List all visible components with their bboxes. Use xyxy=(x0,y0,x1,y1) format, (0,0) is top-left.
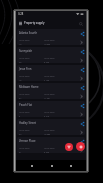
staticText: No of units xyxy=(44,39,55,42)
button[interactable]: Peach Flat xyxy=(17,101,85,117)
staticText: 15,980 xyxy=(44,133,51,135)
staticText: No of units xyxy=(19,129,30,132)
button[interactable]: Share xyxy=(80,68,84,72)
staticText: No of units xyxy=(44,147,55,150)
staticText: 9 xyxy=(19,115,21,117)
button[interactable]: Navigation xyxy=(27,161,36,170)
staticText: 10 xyxy=(19,43,22,45)
staticText: No of units xyxy=(19,39,30,42)
button[interactable]: Share xyxy=(80,140,84,144)
staticText: Atlanta Sourth xyxy=(19,31,38,35)
staticText: No of units xyxy=(19,111,30,114)
staticText: 48 xyxy=(19,61,22,63)
staticText: 12,830 xyxy=(44,43,51,45)
staticText: No of units xyxy=(19,147,30,150)
staticText: 11,601 xyxy=(44,97,51,99)
button[interactable]: Share xyxy=(80,32,84,36)
button[interactable]: Sunnyside xyxy=(17,47,85,63)
staticText: Property supply xyxy=(24,21,45,25)
staticText: No of units xyxy=(44,129,55,132)
button[interactable]: Atlanta Sourth xyxy=(17,29,85,45)
staticText: 21 xyxy=(19,151,22,153)
button[interactable]: Share xyxy=(80,104,84,108)
staticText: 7,130 xyxy=(44,79,50,81)
staticText: No of units xyxy=(44,57,55,60)
button[interactable]: Add property xyxy=(76,142,85,151)
staticText: Vernon Place xyxy=(19,139,36,143)
staticText: 16 xyxy=(19,79,22,81)
button[interactable]: Menu xyxy=(17,20,24,27)
staticText: Peach Flat xyxy=(19,103,32,107)
staticText: No of units xyxy=(44,93,55,96)
staticText: 6,400 xyxy=(44,151,50,153)
staticText: 3,215 xyxy=(44,115,50,117)
staticText: No of units xyxy=(44,75,55,78)
staticText: Jesse Finn xyxy=(19,67,32,71)
button[interactable]: Vernon Place xyxy=(17,137,85,153)
staticText: No of units xyxy=(19,93,30,96)
staticText: Midtown Home xyxy=(19,85,39,89)
staticText: 3:28 xyxy=(18,12,24,16)
button[interactable]: Filter xyxy=(65,143,73,151)
staticText: 27 xyxy=(19,97,22,99)
staticText: Sunnyside xyxy=(19,49,32,53)
staticText: No of units xyxy=(19,75,30,78)
button[interactable]: Navigation xyxy=(66,161,75,170)
button[interactable]: Navigation xyxy=(47,161,56,170)
button[interactable]: Search xyxy=(77,20,84,27)
button[interactable]: Jesse Finn xyxy=(17,65,85,81)
button[interactable]: Share xyxy=(80,50,84,54)
staticText: 33 xyxy=(19,133,22,135)
button[interactable]: Midtown Home xyxy=(17,83,85,99)
staticText: No of units xyxy=(44,111,55,114)
staticText: 9,420 xyxy=(44,61,50,63)
button[interactable]: Hadley Street xyxy=(17,119,85,135)
staticText: No of units xyxy=(19,57,30,60)
button[interactable]: Share xyxy=(80,86,84,90)
staticText: Hadley Street xyxy=(19,121,36,125)
button[interactable]: Share xyxy=(80,122,84,126)
